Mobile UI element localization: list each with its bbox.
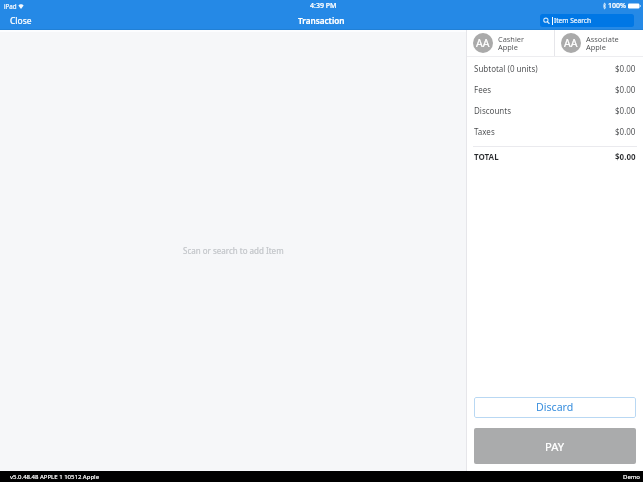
staticText: iPad	[4, 2, 17, 10]
staticText: Cashier Apple	[498, 34, 525, 53]
staticText: Discounts	[474, 105, 512, 116]
staticText: $0.00	[615, 126, 636, 137]
staticText: $0.00	[615, 105, 636, 116]
staticText: Close	[10, 15, 32, 27]
staticText: 100%	[608, 1, 626, 11]
staticText: $0.00	[615, 63, 636, 74]
staticText: Demo	[623, 473, 641, 481]
staticText: TOTAL	[474, 151, 499, 162]
button[interactable]: PAY	[474, 428, 636, 464]
staticText: AA	[476, 36, 490, 50]
button[interactable]: AA	[555, 30, 643, 56]
staticText: 4:39 PM	[310, 1, 337, 11]
staticText: Associate Apple	[586, 34, 619, 53]
button[interactable]: Item Search	[540, 14, 634, 27]
staticText: PAY	[545, 439, 565, 454]
staticText: Transaction	[298, 15, 345, 26]
staticText: Scan or search to add Item	[183, 245, 284, 256]
staticText: Subtotal (0 units)	[474, 63, 538, 74]
staticText: Fees	[474, 84, 492, 95]
staticText: v5.0.48.48 APPLE 1 10512 Apple	[10, 473, 100, 481]
staticText: $0.00	[615, 84, 636, 95]
staticText: AA	[564, 36, 578, 50]
button[interactable]: Discard	[474, 397, 636, 418]
button[interactable]: AA	[467, 30, 554, 56]
staticText: Item Search	[554, 16, 592, 25]
staticText: Taxes	[474, 126, 495, 137]
staticText: $0.00	[615, 151, 636, 162]
button[interactable]: Close	[0, 12, 42, 30]
staticText: Discard	[536, 400, 574, 414]
